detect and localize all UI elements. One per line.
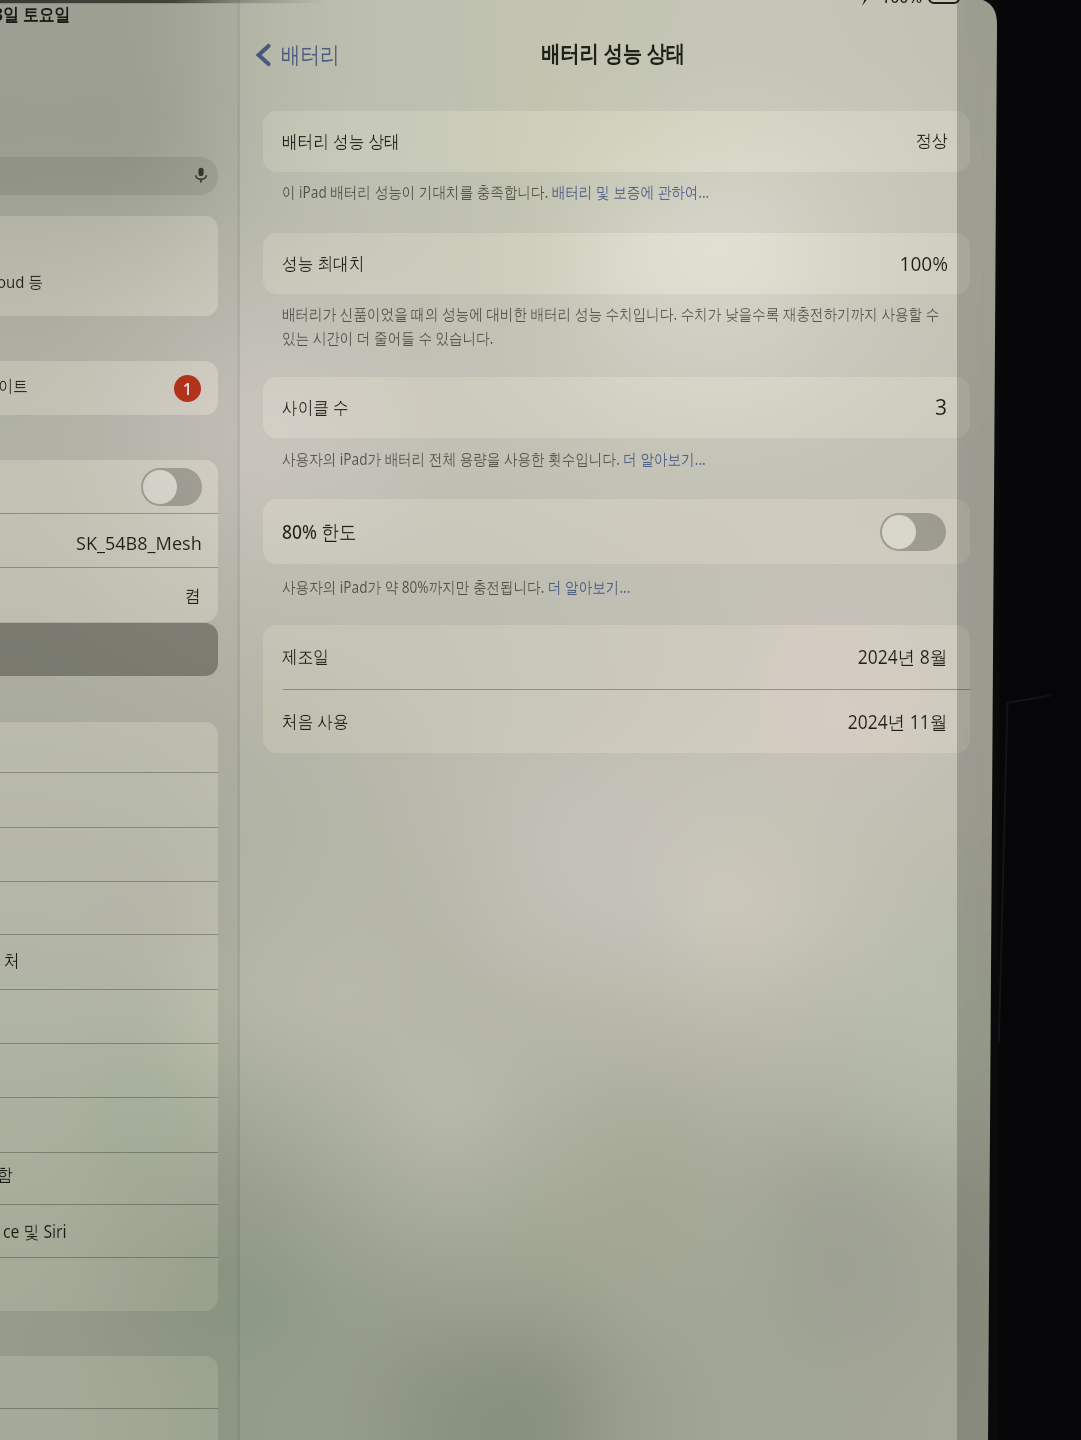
- staticText: 정상: [916, 130, 948, 153]
- staticText: SK_54B8_Mesh: [76, 531, 202, 556]
- staticText: 제조일: [282, 646, 329, 669]
- other: Dictate: [193, 167, 209, 183]
- staticText: 사이클 수: [282, 395, 349, 420]
- staticText: 함: [0, 1164, 13, 1187]
- staticText: 80% 한도: [282, 518, 357, 545]
- button[interactable]: [0, 623, 218, 676]
- staticText: 이트: [0, 376, 28, 397]
- staticText: oud 등: [0, 270, 43, 293]
- button[interactable]: 사이클 수: [263, 377, 970, 438]
- staticText: 100%: [899, 250, 948, 277]
- button[interactable]: [141, 468, 202, 506]
- button[interactable]: 처: [0, 722, 218, 1311]
- staticText: 2024년 11월: [848, 709, 948, 735]
- button[interactable]: 배터리 성능 상태: [263, 111, 970, 172]
- button[interactable]: [880, 513, 946, 551]
- button[interactable]: SK_54B8_Mesh: [0, 460, 218, 622]
- staticText: 성능 최대치: [282, 251, 365, 276]
- staticText: 이 iPad 배터리 성능이 기대치를 충족합니다. 배터리 및 보증에 관하여…: [282, 181, 953, 203]
- staticText: 3: [935, 393, 948, 422]
- button[interactable]: [0, 1356, 218, 1440]
- staticText: 처음 사용: [282, 709, 349, 734]
- button[interactable]: 제조일: [263, 625, 970, 753]
- staticText: 사용자의 iPad가 약 80%까지만 충전됩니다. 더 알아보기...: [282, 576, 953, 598]
- staticText: 2024년 8월: [858, 644, 948, 670]
- button[interactable]: 80% 한도: [263, 499, 970, 564]
- staticText: 배터리: [281, 41, 340, 70]
- staticText: 1: [183, 378, 193, 400]
- staticText: 배터리 성능 상태: [541, 37, 685, 68]
- staticText: 처: [4, 950, 20, 973]
- staticText: 켬: [185, 585, 201, 608]
- staticText: 배터리가 신품이었을 때의 성능에 대비한 배터리 성능 수치입니다. 수치가 …: [282, 303, 953, 349]
- button[interactable]: 배터리: [250, 36, 350, 74]
- staticText: 100%: [881, 0, 923, 8]
- button[interactable]: oud 등: [0, 216, 218, 316]
- button[interactable]: 성능 최대치: [263, 233, 970, 294]
- staticText: 배터리 성능 상태: [282, 129, 400, 154]
- button[interactable]: [0, 157, 218, 195]
- button[interactable]: 이트: [0, 361, 218, 415]
- staticText: ce 및 Siri: [3, 1219, 67, 1244]
- staticText: 사용자의 iPad가 배터리 전체 용량을 사용한 횟수입니다. 더 알아보기.…: [282, 448, 953, 470]
- staticText: 23일 토요일: [0, 2, 71, 27]
